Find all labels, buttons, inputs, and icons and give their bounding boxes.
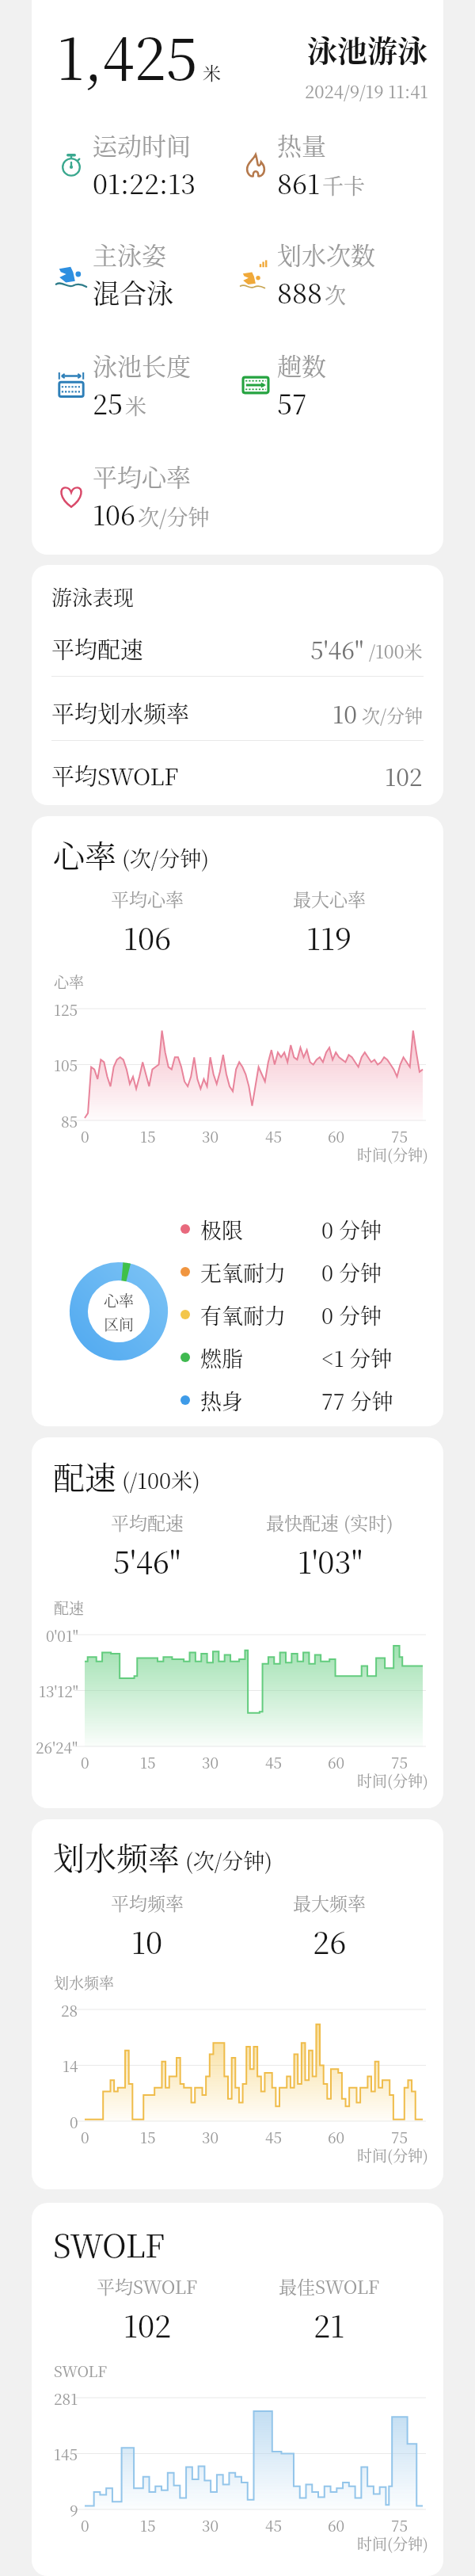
staticText: 0 分钟 [321,1299,382,1330]
staticText: 9 [70,2499,78,2521]
staticText: 时间(分钟) [357,1143,428,1165]
staticText: 45 [265,1751,283,1773]
staticText: 26 [313,1919,347,1963]
staticText: 心率 [53,831,116,876]
staticText: 0 [81,2126,89,2147]
staticText: 热量 [277,127,326,162]
staticText: 30 [202,2514,219,2536]
staticText: 游泳表现 [51,582,135,611]
staticText: 57 [277,384,307,422]
staticText: (/100米) [116,1464,200,1495]
staticText: 861 [277,163,320,202]
staticText: 01:22:13 [93,163,196,202]
staticText: 极限 [200,1214,243,1245]
staticText: 60 [328,1751,345,1773]
staticText: 45 [265,1125,283,1147]
staticText: 75 [391,2514,408,2536]
staticText: 趟数 [277,347,326,383]
staticText: 平均配速 [111,1509,184,1536]
staticText: 平均心率 [93,458,191,494]
staticText: 15 [140,2126,156,2147]
staticText: 2024/9/19 11:41 [305,78,428,104]
staticText: 无氧耐力 [200,1257,286,1288]
staticText: 75 [391,2126,408,2147]
staticText: (次/分钟) [180,1845,273,1876]
staticText: 13'12" [39,1680,78,1701]
staticText: 1,425 [57,14,198,96]
staticText: 区间 [104,1313,135,1334]
staticText: 热身 [200,1385,243,1416]
staticText: 千卡 [322,170,365,200]
staticText: SWOLF [53,2221,165,2266]
staticText: 运动时间 [93,127,191,162]
staticText: 5'46" [310,632,364,666]
staticText: 时间(分钟) [357,2532,428,2554]
staticText: 划水频率 [53,1834,180,1879]
staticText: (次/分钟) [116,842,210,873]
staticText: 102 [385,758,423,792]
staticText: 26'24" [36,1736,78,1757]
staticText: 平均心率 [111,886,184,912]
staticText: 0 [70,2111,78,2132]
staticText: 心率 [54,971,85,992]
staticText: 15 [140,1125,156,1147]
staticText: SWOLF [54,2360,108,2381]
staticText: 米 [203,59,221,86]
staticText: 有氧耐力 [200,1299,286,1330]
staticText: 泳池长度 [93,347,191,383]
staticText: 75 [391,1751,408,1773]
staticText: 最佳SWOLF [279,2273,380,2299]
staticText: 燃脂 [200,1342,243,1373]
staticText: 1'03" [298,1539,363,1582]
staticText: 106 [123,915,172,959]
staticText: 145 [54,2443,78,2464]
staticText: 5'46" [113,1539,181,1582]
staticText: 泳池游泳 [307,27,428,71]
staticText: 45 [265,2126,283,2147]
staticText: 125 [54,998,78,1020]
staticText: 102 [123,2303,172,2346]
staticText: 主泳姿 [93,236,166,272]
staticText: 105 [54,1054,78,1075]
staticText: 75 [391,1125,408,1147]
staticText: 30 [202,1751,219,1773]
staticText: 次/分钟 [138,501,210,532]
staticText: 77 分钟 [321,1385,393,1416]
staticText: 281 [54,2387,78,2409]
staticText: 60 [328,2126,345,2147]
staticText: 最大心率 [293,886,366,912]
staticText: <1 分钟 [321,1342,393,1373]
staticText: 119 [306,915,352,959]
staticText: 85 [61,1110,78,1132]
staticText: 划水频率 [54,1971,115,1993]
staticText: 0 [81,2514,89,2536]
staticText: 0 [81,1125,89,1147]
staticText: 平均频率 [111,1890,184,1916]
staticText: 25 [93,384,123,422]
staticText: 划水次数 [277,236,375,272]
staticText: 60 [328,2514,345,2536]
staticText: 时间(分钟) [357,1769,428,1791]
staticText: 0 分钟 [321,1257,382,1288]
staticText: 平均SWOLF [51,759,179,792]
staticText: /100米 [364,638,423,664]
staticText: 平均划水频率 [51,696,190,730]
staticText: 最大频率 [293,1890,366,1916]
staticText: 米 [125,390,146,421]
staticText: 次/分钟 [357,702,423,728]
staticText: 配速 [54,1597,85,1618]
staticText: 0'01" [46,1624,78,1646]
staticText: 60 [328,1125,345,1147]
staticText: 配速 [53,1453,116,1498]
staticText: 心率 [104,1289,135,1311]
staticText: 30 [202,2126,219,2147]
staticText: 28 [61,1999,78,2021]
staticText: 最快配速 (实时) [266,1509,393,1536]
staticText: 0 [81,1751,89,1773]
staticText: 时间(分钟) [357,2144,428,2166]
staticText: 21 [313,2303,345,2346]
staticText: 10 [332,696,357,730]
staticText: 15 [140,2514,156,2536]
staticText: 14 [63,2055,78,2076]
staticText: 0 分钟 [321,1214,382,1245]
